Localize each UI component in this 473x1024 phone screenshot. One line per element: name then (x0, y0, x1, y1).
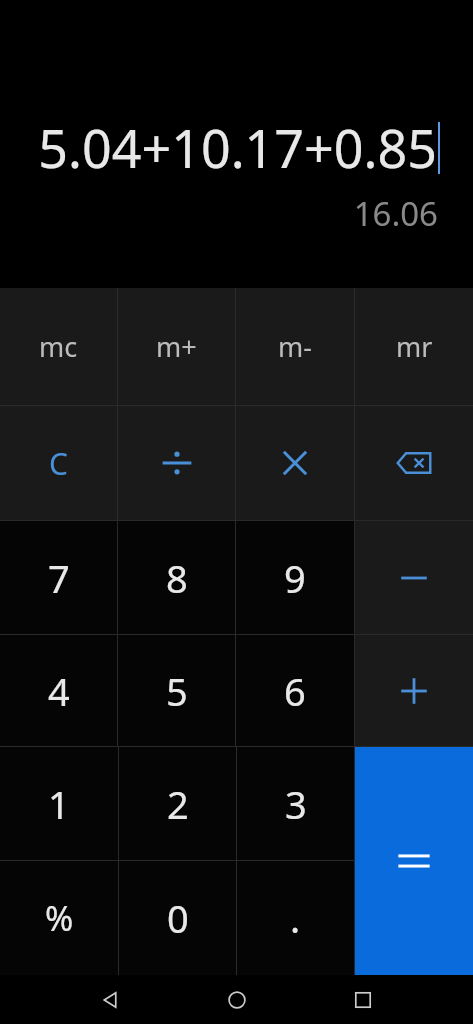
button[interactable]: 2 (119, 747, 236, 860)
button[interactable]: 8 (118, 521, 235, 634)
staticText: 7 (48, 552, 70, 604)
staticText: 16.06 (353, 191, 438, 236)
staticText: mc (39, 328, 78, 365)
staticText: 1 (48, 778, 70, 830)
staticText: m- (278, 328, 312, 365)
button[interactable]: 4 (0, 635, 117, 746)
button[interactable]: 0 (119, 861, 236, 975)
button[interactable]: 6 (236, 635, 354, 746)
button[interactable]: Backspace (355, 406, 473, 520)
staticText: 4 (48, 665, 70, 717)
staticText: 3 (285, 778, 307, 830)
button[interactable]: Recents (343, 980, 383, 1020)
staticText: % (45, 895, 74, 941)
button[interactable]: . (237, 861, 354, 975)
button[interactable]: Equals (355, 747, 473, 975)
staticText: 5.04+10.17+0.85 (38, 112, 437, 183)
button[interactable]: Minus (355, 521, 473, 634)
staticText: 5 (166, 665, 188, 717)
staticText: . (290, 892, 301, 944)
button[interactable]: C (0, 406, 117, 520)
button[interactable]: 5 (118, 635, 235, 746)
staticText: 6 (284, 665, 306, 717)
button[interactable]: % (0, 861, 118, 975)
button[interactable]: mr (355, 288, 473, 405)
button[interactable]: m- (236, 288, 354, 405)
button[interactable]: mc (0, 288, 117, 405)
button[interactable]: Home (217, 980, 257, 1020)
button[interactable]: 1 (0, 747, 118, 860)
staticText: 0 (167, 892, 189, 944)
staticText: mr (396, 328, 433, 365)
staticText: C (49, 443, 68, 484)
button[interactable]: Back (90, 980, 130, 1020)
staticText: m+ (156, 328, 197, 365)
button[interactable]: Divide (118, 406, 235, 520)
button[interactable]: 3 (237, 747, 354, 860)
button[interactable]: m+ (118, 288, 235, 405)
button[interactable]: Plus (355, 635, 473, 746)
staticText: 2 (167, 778, 189, 830)
staticText: 9 (284, 552, 306, 604)
button[interactable]: 9 (236, 521, 354, 634)
button[interactable]: 7 (0, 521, 117, 634)
staticText: 8 (166, 552, 188, 604)
button[interactable]: Multiply (236, 406, 354, 520)
